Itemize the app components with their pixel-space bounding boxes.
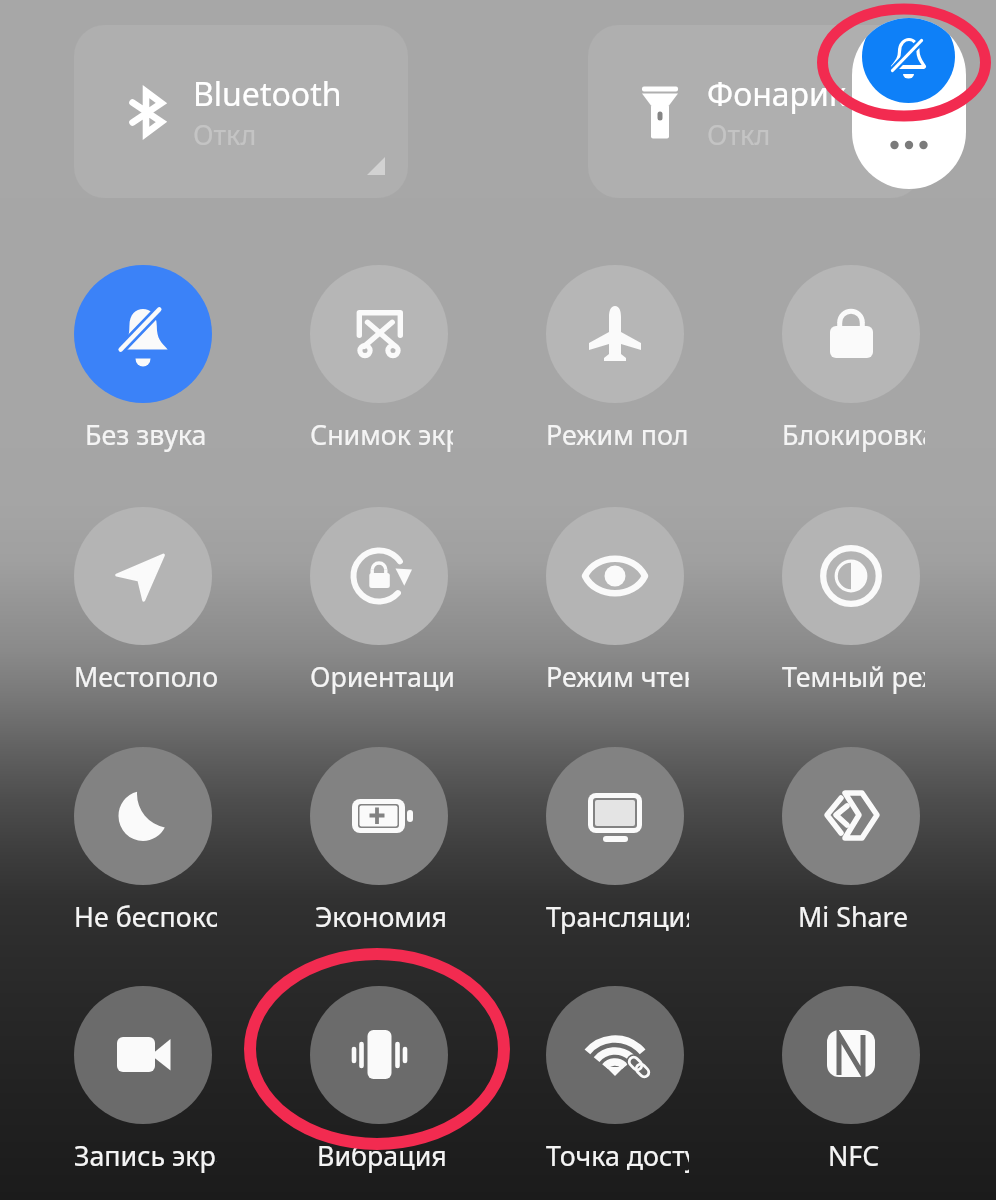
button[interactable]: Блокировка bbox=[733, 265, 969, 495]
button[interactable]: Вибрация bbox=[261, 986, 497, 1200]
button[interactable]: Mute notifications bbox=[862, 18, 955, 103]
staticText: Снимок экрана bbox=[310, 416, 453, 453]
staticText: Вибрация bbox=[317, 1137, 447, 1174]
staticText: Фонарик bbox=[707, 72, 846, 116]
staticText: Откл bbox=[707, 116, 771, 153]
staticText: Трансляция bbox=[546, 898, 689, 935]
button[interactable]: Снимок экрана bbox=[261, 265, 497, 495]
button[interactable]: Режим полета bbox=[497, 265, 733, 495]
button[interactable]: Трансляция bbox=[497, 747, 733, 977]
button[interactable]: More options bbox=[864, 123, 954, 167]
staticText: Местоположение bbox=[74, 658, 217, 695]
button[interactable]: Bluetooth bbox=[74, 25, 408, 198]
button[interactable]: Не беспокоить bbox=[25, 747, 261, 977]
staticText: Экономия bbox=[315, 898, 448, 935]
button[interactable]: Фонарик bbox=[588, 25, 922, 198]
button[interactable]: Режим чтения bbox=[497, 507, 733, 737]
staticText: Ориентация bbox=[310, 658, 453, 695]
button[interactable]: Экономия bbox=[261, 747, 497, 977]
button[interactable]: Местоположение bbox=[25, 507, 261, 737]
staticText: Режим чтения bbox=[546, 658, 689, 695]
button[interactable]: Ориентация bbox=[261, 507, 497, 737]
staticText: NFC bbox=[828, 1137, 880, 1174]
button[interactable]: Точка доступа bbox=[497, 986, 733, 1200]
staticText: Блокировка bbox=[782, 416, 925, 453]
button[interactable]: Mi Share bbox=[733, 747, 969, 977]
staticText: Mi Share bbox=[798, 898, 909, 935]
button[interactable]: Темный режим bbox=[733, 507, 969, 737]
staticText: Точка доступа bbox=[546, 1137, 689, 1174]
button[interactable]: NFC bbox=[733, 986, 969, 1200]
staticText: Откл bbox=[193, 116, 257, 153]
staticText: Темный режим bbox=[782, 658, 925, 695]
staticText: Режим полета bbox=[546, 416, 689, 453]
staticText: Запись экрана bbox=[74, 1137, 217, 1174]
button[interactable]: Без звука bbox=[25, 265, 261, 495]
button[interactable]: Запись экрана bbox=[25, 986, 261, 1200]
staticText: Bluetooth bbox=[193, 72, 342, 116]
staticText: Без звука bbox=[85, 416, 207, 453]
staticText: Не беспокоить bbox=[74, 898, 217, 935]
